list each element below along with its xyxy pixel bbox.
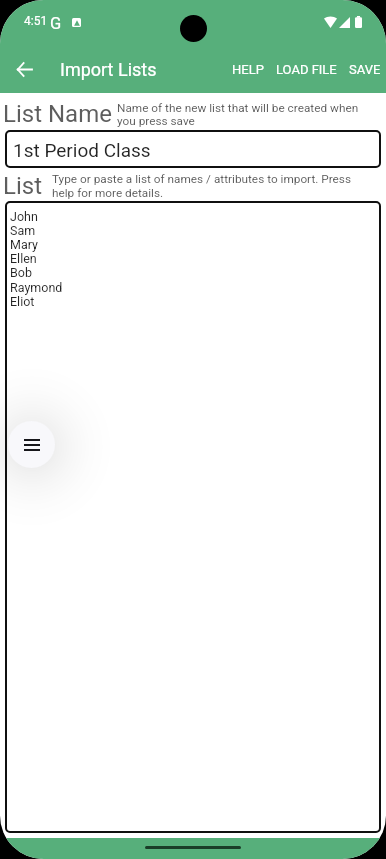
staticText: John [10, 209, 38, 224]
staticText: Ellen [10, 251, 37, 266]
staticText: Eliot [10, 294, 35, 309]
button[interactable]: 1st Period Class [5, 130, 381, 168]
staticText: Sam [10, 223, 36, 238]
button[interactable]: Menu [8, 421, 55, 468]
staticText: G [50, 14, 62, 33]
staticText: SAVE [349, 62, 381, 77]
button[interactable]: HELP [226, 52, 270, 87]
staticText: Import Lists [60, 59, 157, 80]
button[interactable]: SAVE [343, 52, 386, 87]
staticText: Type or paste a list of names / attribut… [52, 172, 352, 200]
staticText: 1st Period Class [13, 139, 151, 161]
staticText: HELP [232, 62, 264, 77]
button[interactable]: Back [0, 45, 48, 93]
staticText: Raymond [10, 280, 63, 295]
staticText: LOAD FILE [276, 62, 337, 77]
staticText: Bob [10, 265, 32, 280]
staticText: Mary [10, 237, 38, 252]
button[interactable]: LOAD FILE [270, 52, 343, 87]
staticText: List Name [3, 100, 112, 128]
button[interactable]: John [5, 201, 381, 833]
staticText: Name of the new list that will be create… [117, 101, 367, 128]
staticText: List [3, 172, 42, 200]
staticText: 4:51 [24, 14, 48, 28]
